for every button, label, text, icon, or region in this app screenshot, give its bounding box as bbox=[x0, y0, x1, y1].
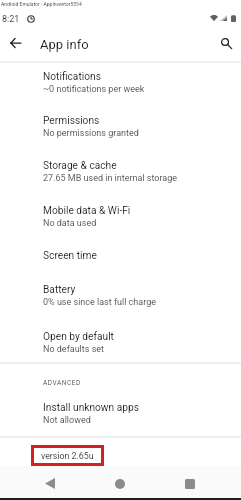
button[interactable]: Back bbox=[35, 469, 64, 498]
button[interactable]: Recent apps bbox=[175, 469, 204, 498]
button[interactable]: Notifications bbox=[0, 60, 241, 105]
staticText: App info bbox=[40, 37, 89, 52]
staticText: 27.65 MB used in internal storage bbox=[43, 173, 178, 184]
button[interactable]: Search bbox=[214, 31, 238, 55]
button[interactable]: Permissions bbox=[0, 104, 241, 149]
button[interactable]: Home bbox=[105, 469, 134, 498]
staticText: No permissions granted bbox=[43, 128, 139, 139]
button[interactable]: Open by default bbox=[0, 320, 241, 365]
staticText: version 2.65u bbox=[41, 451, 94, 461]
button[interactable]: Install unknown apps bbox=[0, 391, 241, 436]
staticText: Screen time bbox=[43, 250, 97, 262]
staticText: Android Emulator - AppInventor5554 bbox=[1, 1, 82, 7]
staticText: 8:21 bbox=[2, 14, 20, 25]
staticText: No data used bbox=[43, 218, 97, 229]
staticText: Open by default bbox=[43, 331, 114, 343]
staticText: Mobile data & Wi-Fi bbox=[43, 205, 131, 217]
staticText: Notifications bbox=[43, 71, 101, 83]
staticText: Permissions bbox=[43, 115, 100, 127]
staticText: ADVANCED bbox=[43, 379, 81, 387]
button[interactable]: Battery bbox=[0, 273, 241, 318]
staticText: No defaults set bbox=[43, 344, 104, 355]
staticText: Install unknown apps bbox=[43, 402, 139, 414]
staticText: Not allowed bbox=[43, 415, 91, 426]
button[interactable]: Screen time bbox=[0, 239, 241, 273]
staticText: Storage & cache bbox=[43, 160, 117, 172]
button[interactable]: Navigate up bbox=[3, 31, 27, 55]
staticText: Battery bbox=[43, 284, 76, 296]
staticText: ~0 notifications per week bbox=[43, 84, 145, 95]
button[interactable]: Mobile data & Wi-Fi bbox=[0, 194, 241, 239]
staticText: 0% use since last full charge bbox=[43, 297, 156, 308]
button[interactable]: Storage & cache bbox=[0, 149, 241, 194]
